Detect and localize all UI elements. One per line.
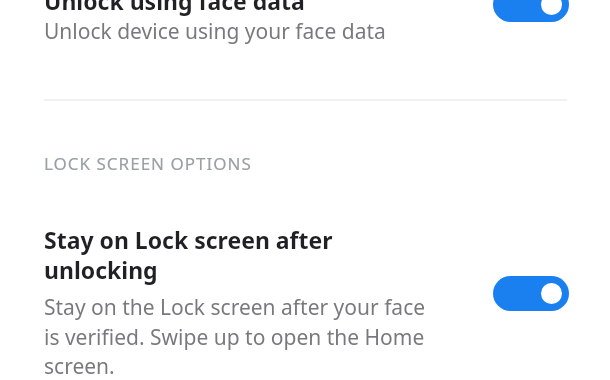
button[interactable]: Unlock using face data	[0, 0, 610, 100]
staticText: LOCK SCREEN OPTIONS	[44, 152, 252, 175]
button[interactable]: Unlock using face data toggle, on	[493, 0, 569, 22]
staticText: Stay on Lock screen after unlocking	[44, 224, 333, 286]
staticText: Stay on the Lock screen after your face …	[44, 293, 426, 380]
button[interactable]: Stay on Lock screen after unlocking togg…	[493, 276, 569, 311]
button[interactable]: Stay on Lock screen after unlocking	[0, 215, 610, 380]
staticText: Unlock device using your face data	[44, 17, 386, 46]
staticText: Unlock using face data	[44, 0, 305, 16]
